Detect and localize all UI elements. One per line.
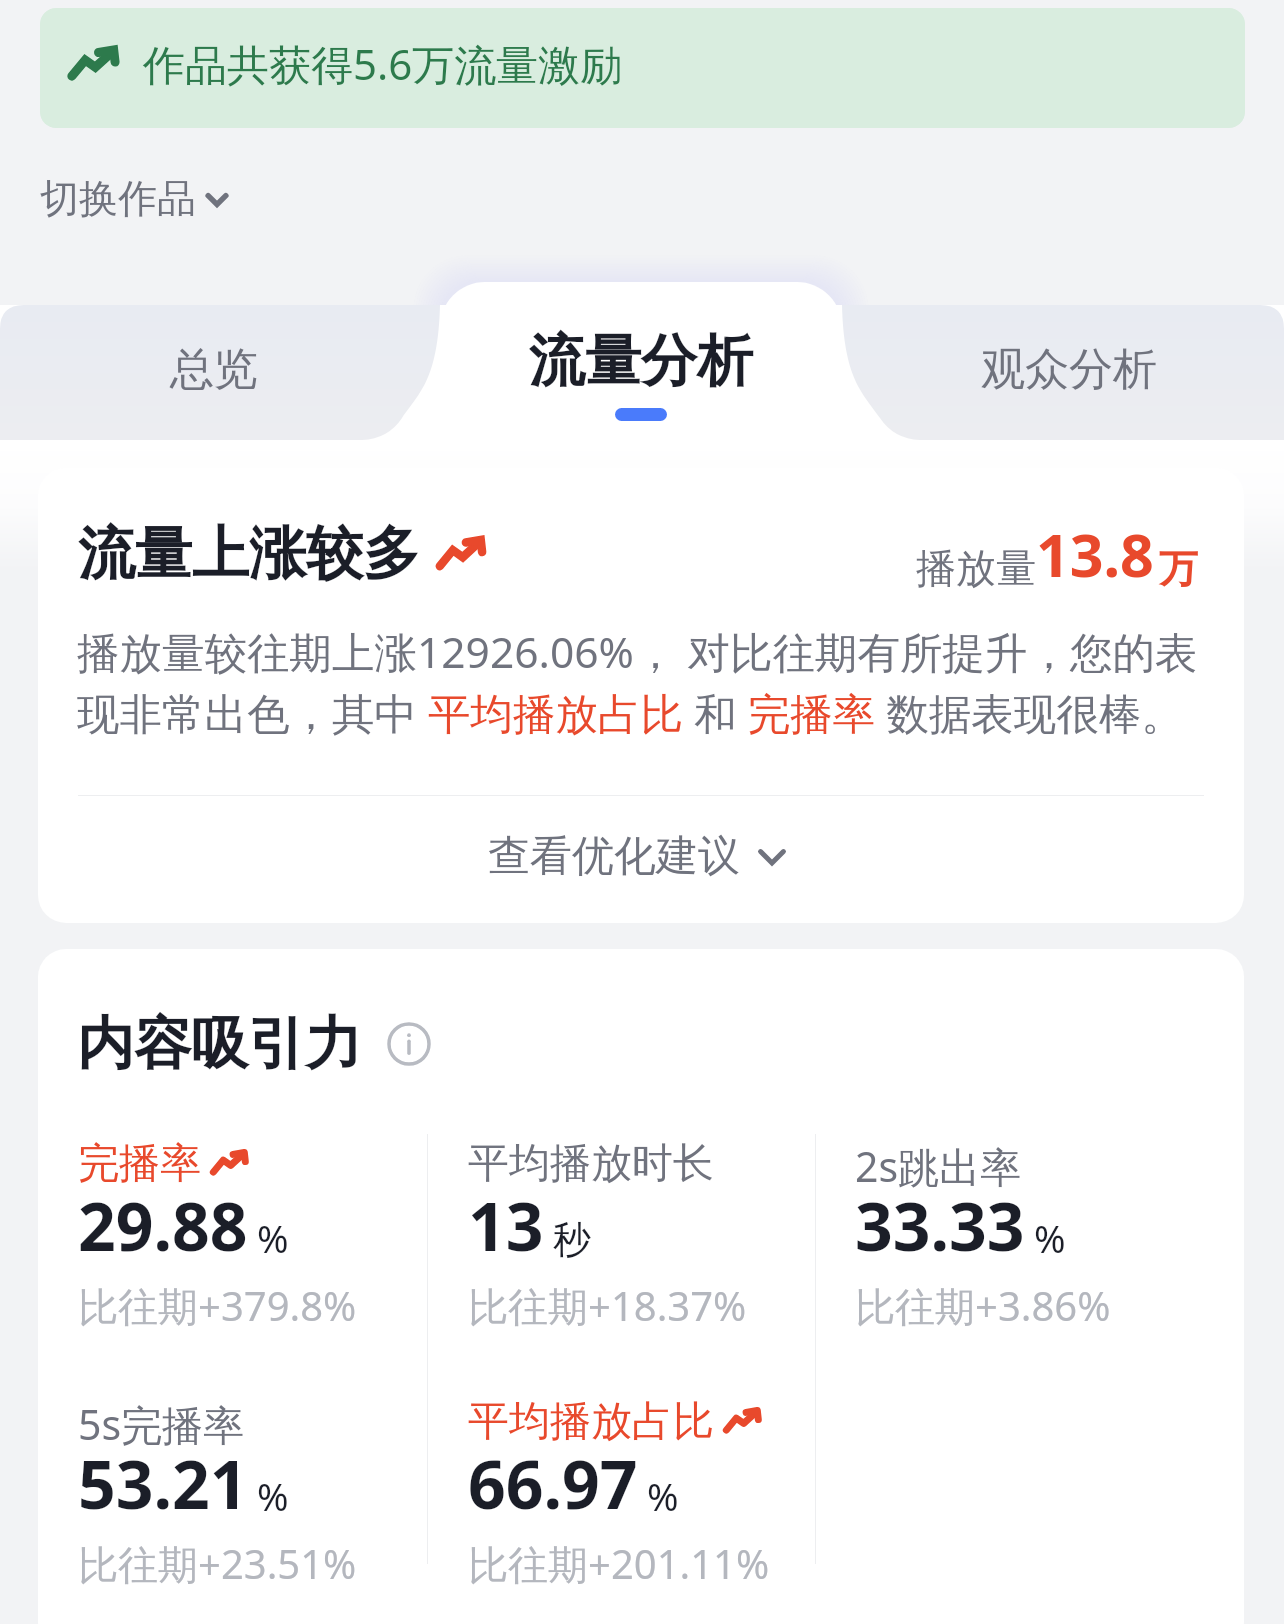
staticText: 总览 xyxy=(170,342,258,397)
staticText: 13.8 xyxy=(1036,514,1154,594)
button[interactable]: 完播率 xyxy=(78,1122,408,1362)
staticText: 观众分析 xyxy=(981,342,1157,397)
staticText: 5s完播率 xyxy=(78,1396,245,1452)
staticText: 33.33 xyxy=(855,1180,1025,1270)
staticText: 内容吸引力 xyxy=(77,1008,362,1080)
button[interactable]: 作品共获得5.6万流量激励 xyxy=(40,8,1245,128)
staticText: 万 xyxy=(1159,544,1198,593)
button[interactable]: 流量分析 xyxy=(440,282,842,440)
staticText: % xyxy=(647,1470,679,1522)
staticText: 播放量 xyxy=(916,543,1036,593)
staticText: 切换作品 xyxy=(40,174,196,223)
button[interactable]: 查看优化建议 xyxy=(38,796,1244,916)
staticText: 66.97 xyxy=(468,1438,638,1528)
button[interactable]: 总览 xyxy=(0,305,440,440)
button[interactable]: 切换作品 xyxy=(40,174,234,223)
button[interactable]: 平均播放时长 xyxy=(468,1122,798,1362)
staticText: 播放量较往期上涨12926.06%， 对比往期有所提升，您的表现非常出色，其中 … xyxy=(77,623,1209,742)
staticText: 作品共获得5.6万流量激励 xyxy=(143,35,623,92)
staticText: 查看优化建议 xyxy=(488,830,740,883)
staticText: 秒 xyxy=(553,1216,591,1264)
staticText: 比往期+23.51% xyxy=(78,1536,357,1591)
staticText: % xyxy=(257,1470,289,1522)
staticText: 13 xyxy=(468,1180,544,1270)
staticText: 平均播放占比 xyxy=(468,1396,714,1448)
button[interactable]: 平均播放占比 xyxy=(468,1380,798,1620)
staticText: 比往期+18.37% xyxy=(468,1278,747,1333)
staticText: 完播率 xyxy=(78,1138,201,1190)
button[interactable]: 2s跳出率 xyxy=(855,1122,1185,1362)
button[interactable]: 5s完播率 xyxy=(78,1380,408,1620)
staticText: 平均播放时长 xyxy=(468,1138,714,1190)
staticText: 比往期+379.8% xyxy=(78,1278,357,1333)
button[interactable]: About 内容吸引力 xyxy=(387,1022,431,1066)
staticText: 比往期+3.86% xyxy=(855,1278,1111,1333)
staticText: 流量上涨较多 xyxy=(78,518,420,590)
staticText: % xyxy=(1034,1212,1066,1264)
staticText: 比往期+201.11% xyxy=(468,1536,770,1591)
staticText: 2s跳出率 xyxy=(855,1138,1022,1194)
staticText: 29.88 xyxy=(78,1180,248,1270)
button[interactable]: 观众分析 xyxy=(842,305,1284,440)
staticText: 53.21 xyxy=(78,1438,248,1528)
staticText: % xyxy=(257,1212,289,1264)
staticText: 流量分析 xyxy=(529,326,753,397)
